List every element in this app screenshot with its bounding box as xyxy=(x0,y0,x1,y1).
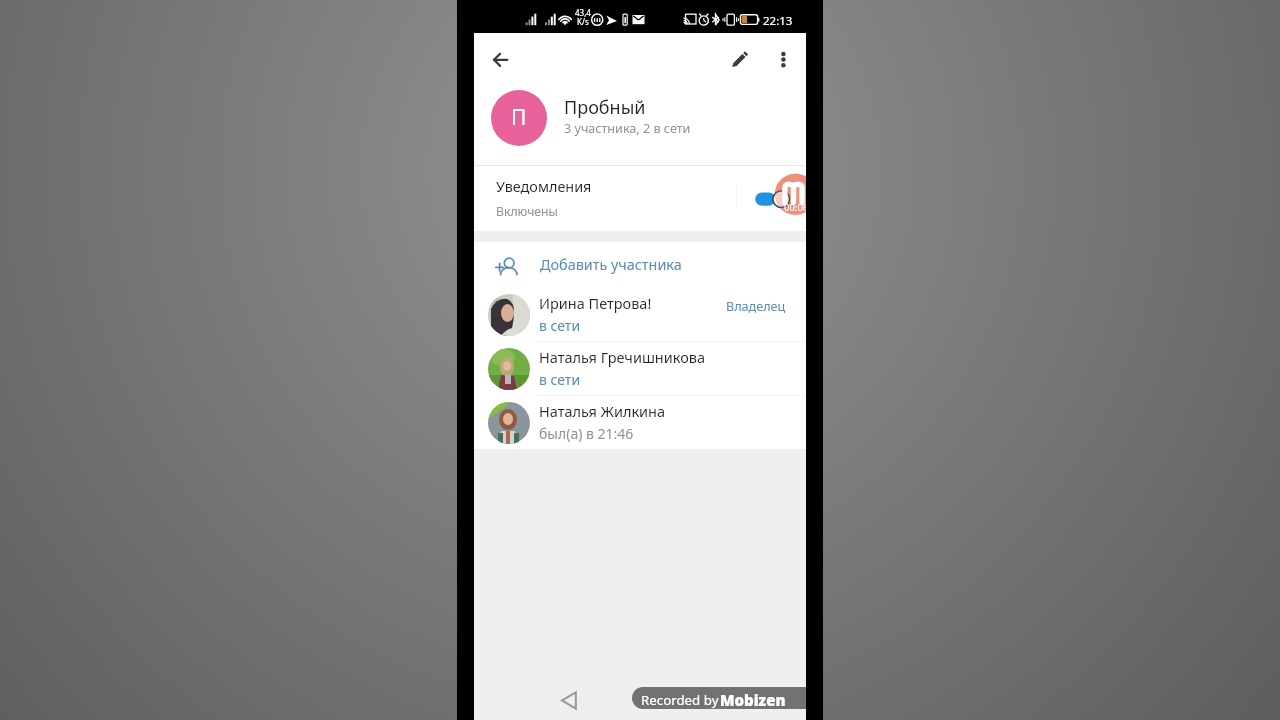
staticText: Наталья Гречишникова xyxy=(539,347,706,367)
button[interactable]: Ирина Петрова! xyxy=(474,288,806,341)
staticText: Пробный xyxy=(564,95,646,120)
staticText: П xyxy=(511,103,527,132)
button[interactable]: More options xyxy=(766,40,806,80)
button[interactable]: Наталья Гречишникова xyxy=(474,342,806,395)
staticText: 22:13 xyxy=(763,13,793,29)
staticText: Владелец xyxy=(726,298,786,315)
staticText: Ирина Петрова! xyxy=(539,293,652,313)
staticText: Уведомления xyxy=(496,177,592,197)
button[interactable]: Notifications switch xyxy=(751,181,787,215)
staticText: K/s xyxy=(577,16,589,27)
button[interactable]: Наталья Жилкина xyxy=(474,396,806,449)
staticText: был(а) в 21:46 xyxy=(539,424,634,443)
staticText: 43,4 xyxy=(575,7,591,18)
staticText: в сети xyxy=(539,316,581,335)
button[interactable]: Добавить участника xyxy=(474,242,806,288)
staticText: в сети xyxy=(539,370,581,389)
button[interactable]: Back xyxy=(560,685,584,711)
button[interactable]: П xyxy=(474,86,806,165)
button[interactable]: Edit xyxy=(723,40,763,80)
staticText: 00:06 xyxy=(784,201,806,214)
staticText: Наталья Жилкина xyxy=(539,401,666,421)
button[interactable]: Back xyxy=(480,40,520,80)
staticText: Добавить участника xyxy=(540,255,682,275)
staticText: 3 участника, 2 в сети xyxy=(564,120,691,137)
staticText: Mobizen xyxy=(720,690,786,709)
button[interactable]: Уведомления xyxy=(474,166,806,231)
staticText: Включены xyxy=(496,203,558,220)
staticText: Recorded by xyxy=(641,691,719,709)
